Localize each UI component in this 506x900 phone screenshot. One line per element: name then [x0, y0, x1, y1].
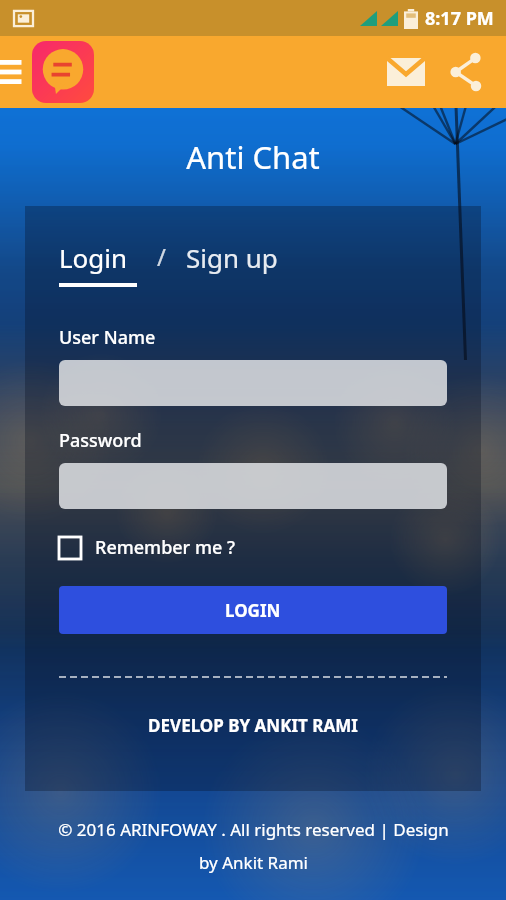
- button[interactable]: Anti Chat logo: [32, 41, 94, 103]
- button[interactable]: Messages: [380, 46, 432, 98]
- staticText: by Ankit Rami: [199, 851, 308, 874]
- button[interactable]: Open navigation menu: [0, 49, 30, 95]
- button[interactable]: Login tab: [59, 240, 137, 287]
- button[interactable]: Share: [440, 46, 492, 98]
- staticText: /: [157, 240, 166, 273]
- staticText: 8:17 PM: [425, 6, 494, 31]
- staticText: Password: [59, 428, 142, 453]
- staticText: Login: [59, 240, 128, 275]
- button[interactable]: Password field: [59, 463, 447, 509]
- button[interactable]: Remember me ?: [59, 535, 236, 560]
- staticText: LOGIN: [225, 599, 281, 622]
- button[interactable]: LOGIN: [59, 586, 447, 634]
- button[interactable]: Sign up: [186, 240, 278, 275]
- staticText: DEVELOP BY ANKIT RAMI: [59, 714, 447, 737]
- staticText: Remember me ?: [95, 535, 236, 560]
- staticText: Anti Chat: [186, 136, 320, 178]
- button[interactable]: User name field: [59, 360, 447, 406]
- staticText: User Name: [59, 325, 156, 350]
- staticText: © 2016 ARINFOWAY . All rights reserved |…: [58, 818, 449, 841]
